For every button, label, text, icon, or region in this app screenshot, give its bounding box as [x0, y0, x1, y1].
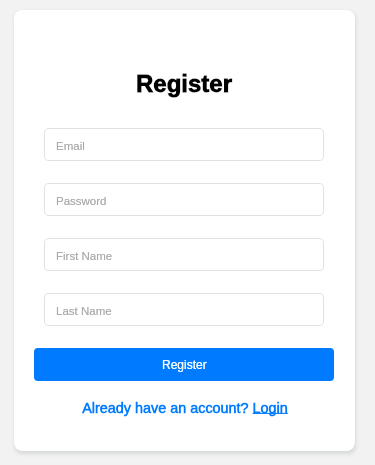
staticText: Already have an account? Login: [82, 400, 288, 416]
button[interactable]: Already have an account? Login: [82, 400, 288, 416]
staticText: Last Name: [56, 305, 112, 318]
staticText: Password: [56, 195, 107, 208]
button[interactable]: Register: [34, 348, 334, 381]
staticText: Register: [162, 358, 207, 371]
staticText: Register: [136, 70, 233, 97]
button[interactable]: Last Name: [44, 293, 324, 326]
button[interactable]: Email: [44, 128, 324, 161]
button[interactable]: Password: [44, 183, 324, 216]
button[interactable]: First Name: [44, 238, 324, 271]
staticText: Email: [56, 140, 85, 153]
staticText: First Name: [56, 250, 113, 263]
